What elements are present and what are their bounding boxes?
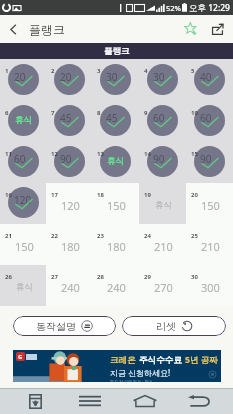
staticText: 23 bbox=[97, 232, 104, 240]
button[interactable]: 60 bbox=[186, 101, 233, 142]
staticText: 30 bbox=[106, 70, 118, 84]
staticText: 30 bbox=[153, 70, 165, 84]
staticText: 60 bbox=[14, 152, 26, 166]
button[interactable]: 20 bbox=[0, 59, 46, 101]
staticText: 60 bbox=[153, 111, 165, 125]
staticText: 210 bbox=[201, 239, 220, 254]
button[interactable]: 30 bbox=[92, 59, 139, 101]
button[interactable]: 120 bbox=[0, 183, 46, 224]
button[interactable]: 120 bbox=[46, 183, 92, 224]
staticText: 12 bbox=[51, 150, 58, 158]
button[interactable]: Back bbox=[186, 388, 212, 414]
button[interactable]: 동작설명 bbox=[13, 316, 116, 336]
staticText: 휴식 bbox=[16, 282, 33, 293]
button[interactable]: 240 bbox=[46, 265, 92, 306]
staticText: 90 bbox=[60, 152, 72, 166]
staticText: 9 bbox=[144, 109, 148, 117]
button[interactable]: 20 bbox=[46, 59, 92, 101]
button[interactable]: 300 bbox=[186, 265, 233, 306]
staticText: 동작설명 bbox=[36, 320, 76, 333]
staticText: 60 bbox=[200, 111, 212, 125]
staticText: 3 bbox=[97, 67, 101, 75]
staticText: 2 bbox=[51, 67, 55, 75]
staticText: 20 bbox=[191, 191, 198, 199]
button[interactable]: 휴식 bbox=[139, 183, 186, 224]
button[interactable]: 60 bbox=[0, 142, 46, 183]
staticText: 150 bbox=[201, 198, 220, 213]
button[interactable]: 45 bbox=[46, 101, 92, 142]
staticText: 19 bbox=[144, 191, 151, 199]
staticText: 180 bbox=[107, 239, 126, 254]
staticText: 플랭크 bbox=[29, 22, 65, 37]
staticText: 210 bbox=[154, 239, 173, 254]
staticText: 28 bbox=[97, 273, 104, 281]
staticText: 크레온 bbox=[110, 354, 139, 366]
button[interactable]: Home bbox=[132, 388, 158, 414]
staticText: 120 bbox=[14, 193, 32, 207]
staticText: 리셋 bbox=[156, 320, 176, 333]
staticText: 240 bbox=[107, 280, 126, 295]
button[interactable]: 휴식 bbox=[0, 265, 46, 306]
button[interactable]: 30 bbox=[139, 59, 186, 101]
staticText: 150 bbox=[15, 239, 34, 254]
staticText: 13 bbox=[97, 150, 104, 158]
staticText: 29 bbox=[144, 273, 151, 281]
staticText: 투자 전 설명 청취 · 확인 bbox=[110, 379, 153, 382]
button[interactable]: 210 bbox=[186, 224, 233, 265]
staticText: 4 bbox=[144, 67, 148, 75]
button[interactable]: 180 bbox=[92, 224, 139, 265]
staticText: 20 bbox=[14, 70, 26, 84]
button[interactable]: 150 bbox=[92, 183, 139, 224]
button[interactable]: 휴식 bbox=[0, 101, 46, 142]
staticText: 5 bbox=[191, 67, 195, 75]
button[interactable]: 180 bbox=[46, 224, 92, 265]
button[interactable]: 240 bbox=[92, 265, 139, 306]
button[interactable]: Favorite bbox=[178, 15, 204, 43]
staticText: 17 bbox=[51, 191, 58, 199]
button[interactable]: G bbox=[13, 350, 221, 382]
staticText: 120 bbox=[61, 198, 80, 213]
button[interactable]: 40 bbox=[186, 59, 233, 101]
staticText: 27 bbox=[51, 273, 58, 281]
button[interactable]: Recent apps bbox=[77, 388, 103, 414]
button[interactable]: 270 bbox=[139, 265, 186, 306]
button[interactable]: 90 bbox=[139, 142, 186, 183]
button[interactable]: 150 bbox=[186, 183, 233, 224]
staticText: 지금 신청하세요! bbox=[110, 367, 171, 378]
staticText: 8 bbox=[97, 109, 101, 117]
staticText: 14 bbox=[144, 150, 151, 158]
staticText: 10 bbox=[191, 109, 198, 117]
staticText: G bbox=[18, 353, 23, 361]
button[interactable]: 90 bbox=[186, 142, 233, 183]
staticText: 6 bbox=[5, 109, 9, 117]
button[interactable]: 90 bbox=[46, 142, 92, 183]
staticText: 25 bbox=[191, 232, 198, 240]
button[interactable]: 210 bbox=[139, 224, 186, 265]
button[interactable]: Back bbox=[0, 15, 27, 43]
staticText: 180 bbox=[61, 239, 80, 254]
staticText: 16 bbox=[5, 191, 12, 199]
staticText: 90 bbox=[200, 152, 212, 166]
staticText: 18 bbox=[97, 191, 104, 199]
staticText: 11 bbox=[5, 150, 12, 158]
button[interactable]: 150 bbox=[0, 224, 46, 265]
staticText: 휴식 bbox=[15, 115, 32, 126]
staticText: 플랭크 bbox=[104, 46, 130, 57]
staticText: 45 bbox=[106, 111, 118, 125]
staticText: 1 bbox=[5, 67, 9, 75]
button[interactable]: 휴식 bbox=[92, 142, 139, 183]
staticText: 45 bbox=[60, 111, 72, 125]
staticText: 5년 공짜 bbox=[185, 354, 218, 366]
staticText: 24 bbox=[144, 232, 151, 240]
staticText: 300 bbox=[201, 280, 220, 295]
staticText: 7 bbox=[51, 109, 55, 117]
button[interactable]: 리셋 bbox=[122, 316, 226, 336]
button[interactable]: 45 bbox=[92, 101, 139, 142]
button[interactable]: Share bbox=[204, 15, 230, 43]
staticText: 휴식 bbox=[155, 200, 172, 211]
button[interactable]: 60 bbox=[139, 101, 186, 142]
button[interactable]: Hide keyboard bbox=[22, 388, 48, 414]
staticText: 휴식 bbox=[107, 156, 124, 167]
staticText: 150 bbox=[107, 198, 126, 213]
staticText: 40 bbox=[200, 70, 212, 84]
